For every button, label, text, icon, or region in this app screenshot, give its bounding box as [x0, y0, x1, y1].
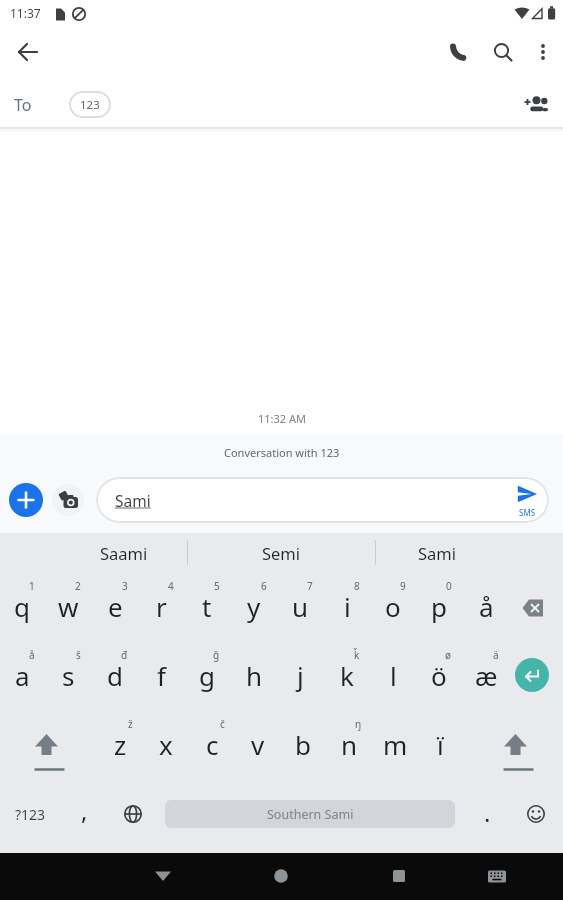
staticText: ŋ: [355, 717, 362, 731]
staticText: j: [297, 658, 304, 693]
staticText: ä: [493, 648, 499, 662]
button[interactable]: Semi: [191, 533, 371, 572]
staticText: 8: [354, 579, 360, 593]
button[interactable]: i: [324, 572, 370, 641]
staticText: b: [295, 727, 311, 762]
button[interactable]: .: [467, 778, 507, 847]
button[interactable]: Sami: [347, 533, 527, 572]
button[interactable]: e: [92, 572, 138, 641]
button[interactable]: x: [143, 710, 189, 779]
staticText: ž: [128, 717, 133, 731]
staticText: SMS: [519, 507, 536, 518]
button[interactable]: Saami: [34, 533, 214, 572]
button[interactable]: t: [184, 572, 230, 641]
button[interactable]: [23, 710, 70, 779]
staticText: 11:37: [10, 5, 41, 21]
button[interactable]: r: [138, 572, 184, 641]
button[interactable]: æ: [463, 641, 509, 710]
button[interactable]: o: [370, 572, 416, 641]
button[interactable]: [149, 862, 177, 890]
staticText: s: [62, 658, 75, 693]
button[interactable]: [509, 572, 556, 641]
staticText: a: [15, 658, 30, 693]
staticText: p: [431, 589, 447, 624]
staticText: ?123: [15, 805, 46, 824]
staticText: 5: [214, 579, 220, 593]
staticText: š: [76, 648, 81, 662]
staticText: q: [14, 589, 30, 624]
button[interactable]: 123: [69, 91, 111, 118]
staticText: x: [159, 727, 173, 762]
staticText: c: [206, 727, 219, 762]
button[interactable]: [515, 658, 549, 692]
button[interactable]: f: [138, 641, 184, 710]
staticText: ǩ: [354, 648, 360, 662]
button[interactable]: [385, 862, 413, 890]
staticText: m: [383, 727, 408, 762]
button[interactable]: [9, 483, 43, 517]
staticText: å: [479, 589, 494, 624]
button[interactable]: [492, 710, 539, 779]
button[interactable]: Sami: [96, 477, 549, 523]
button[interactable]: [52, 484, 84, 516]
button[interactable]: [534, 40, 552, 64]
button[interactable]: j: [277, 641, 323, 710]
staticText: ,: [81, 794, 88, 827]
button[interactable]: [120, 801, 146, 827]
button[interactable]: z: [97, 710, 143, 779]
button[interactable]: v: [235, 710, 281, 779]
staticText: 1: [29, 579, 35, 593]
button[interactable]: [523, 801, 549, 827]
button[interactable]: u: [277, 572, 323, 641]
button[interactable]: ö: [416, 641, 462, 710]
button[interactable]: [483, 862, 511, 890]
staticText: g: [199, 658, 215, 693]
button[interactable]: q: [0, 572, 45, 641]
staticText: 3: [122, 579, 128, 593]
staticText: k: [340, 658, 354, 693]
button[interactable]: k: [324, 641, 370, 710]
button[interactable]: g: [184, 641, 230, 710]
button[interactable]: ,: [64, 776, 104, 845]
button[interactable]: ï: [417, 710, 463, 779]
button[interactable]: b: [280, 710, 326, 779]
staticText: r: [156, 589, 167, 624]
button[interactable]: [16, 40, 40, 64]
button[interactable]: [447, 41, 469, 63]
staticText: l: [390, 658, 397, 693]
staticText: t: [202, 589, 212, 624]
button[interactable]: n: [326, 710, 372, 779]
button[interactable]: p: [416, 572, 462, 641]
button[interactable]: l: [370, 641, 416, 710]
button[interactable]: å: [463, 572, 509, 641]
staticText: 123: [80, 97, 100, 113]
button[interactable]: [267, 862, 295, 890]
button[interactable]: ?123: [0, 780, 60, 849]
staticText: f: [157, 658, 166, 693]
staticText: ö: [431, 658, 447, 693]
button[interactable]: m: [372, 710, 418, 779]
button[interactable]: d: [92, 641, 138, 710]
button[interactable]: [516, 483, 540, 505]
staticText: d: [107, 658, 123, 693]
staticText: 6: [261, 579, 267, 593]
button[interactable]: a: [0, 641, 45, 710]
staticText: z: [114, 727, 127, 762]
staticText: i: [344, 589, 351, 624]
button[interactable]: w: [45, 572, 91, 641]
staticText: 2: [75, 579, 81, 593]
button[interactable]: [492, 41, 514, 63]
button[interactable]: c: [189, 710, 235, 779]
staticText: w: [58, 589, 79, 624]
button[interactable]: [522, 92, 550, 116]
staticText: 0: [446, 579, 452, 593]
staticText: å: [29, 648, 35, 662]
staticText: đ: [121, 648, 128, 662]
staticText: Conversation with 123: [224, 445, 340, 460]
button[interactable]: s: [45, 641, 91, 710]
button[interactable]: Southern Sami: [165, 800, 455, 828]
staticText: .: [484, 796, 491, 829]
button[interactable]: y: [231, 572, 277, 641]
button[interactable]: h: [231, 641, 277, 710]
staticText: e: [108, 589, 123, 624]
